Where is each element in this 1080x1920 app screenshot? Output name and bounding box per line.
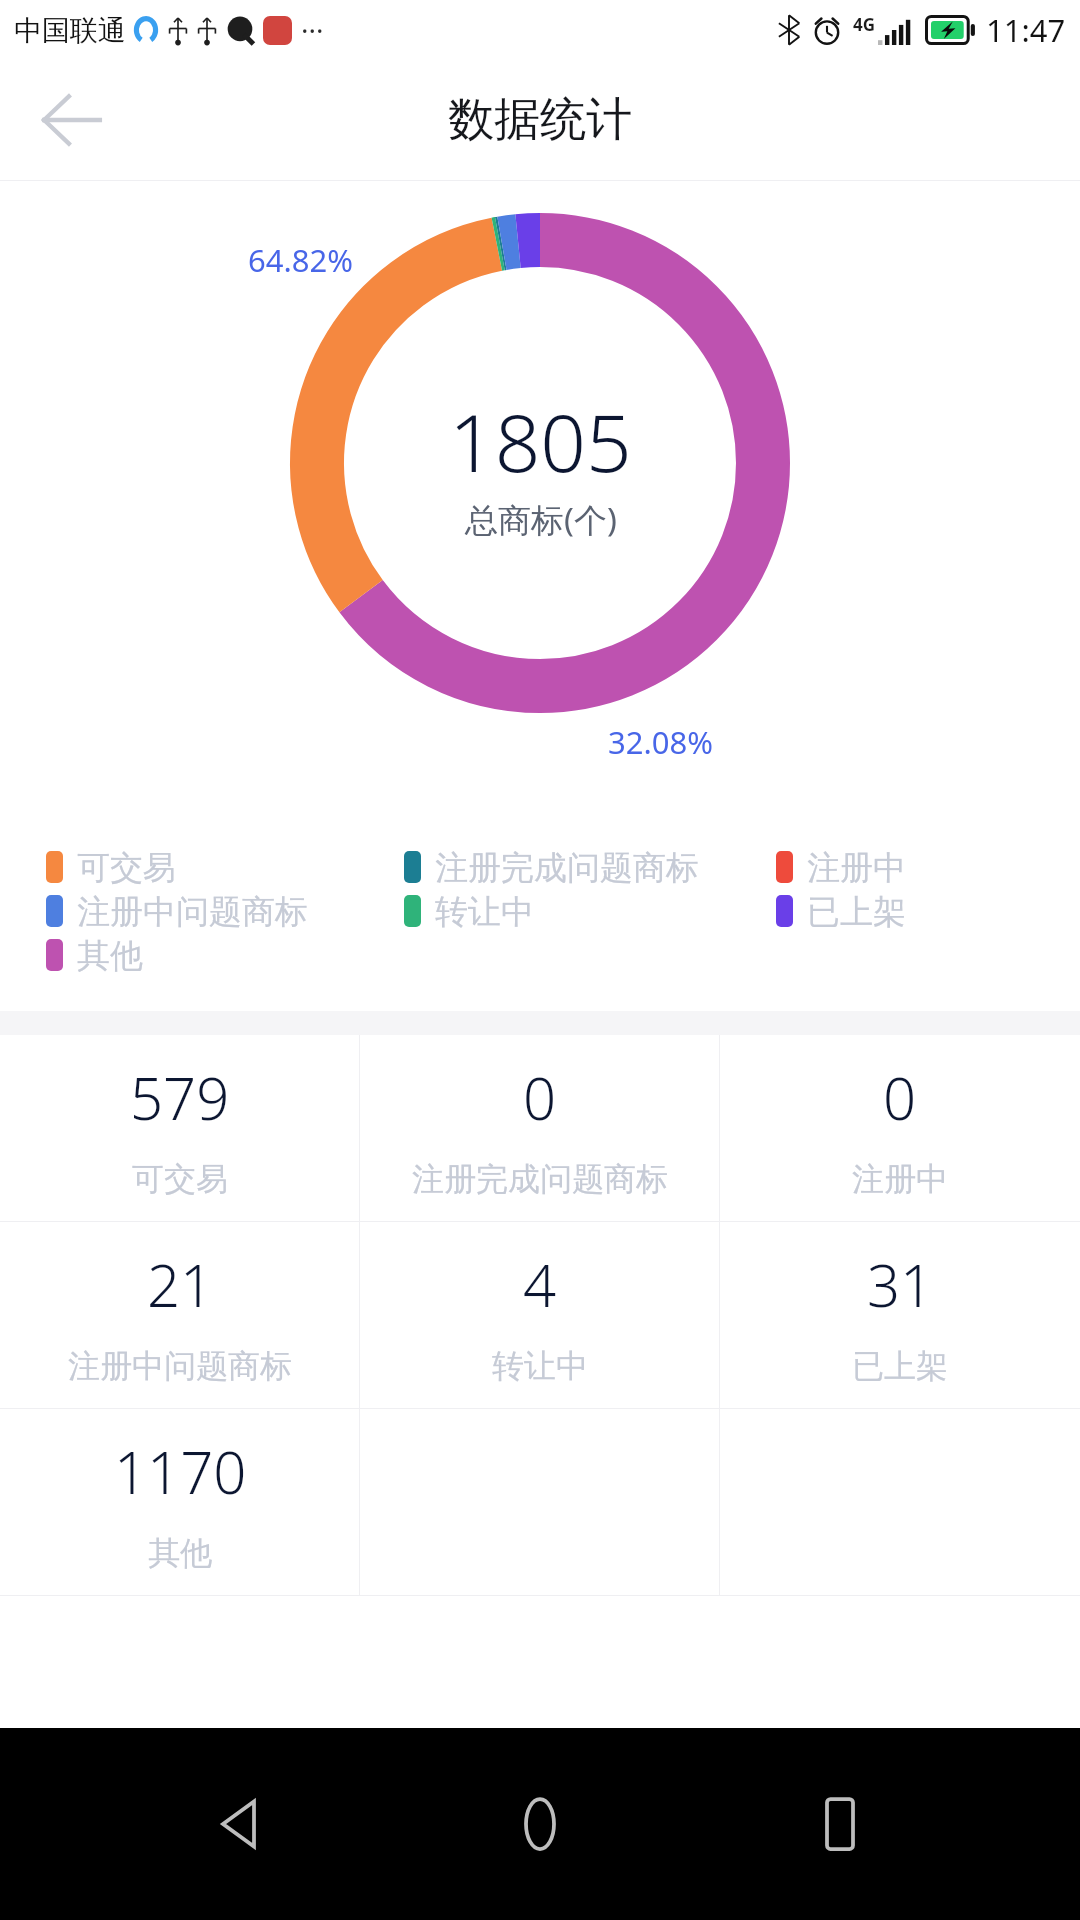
button[interactable]: 注册中问题商标 bbox=[46, 891, 308, 931]
button[interactable]: 0 bbox=[360, 1035, 720, 1221]
button[interactable]: 可交易 bbox=[46, 847, 176, 887]
button[interactable]: 1170 bbox=[0, 1409, 360, 1595]
staticText: 数据统计 bbox=[448, 91, 632, 149]
button[interactable]: 注册完成问题商标 bbox=[404, 847, 699, 887]
staticText: 1805 bbox=[449, 386, 632, 495]
button[interactable]: 其他 bbox=[46, 935, 143, 975]
staticText: 注册完成问题商标 bbox=[435, 847, 699, 887]
staticText: 可交易 bbox=[77, 847, 176, 887]
button[interactable]: Home bbox=[480, 1764, 600, 1884]
staticText: 32.08% bbox=[608, 721, 713, 763]
button[interactable]: 4 bbox=[360, 1222, 720, 1408]
button[interactable]: 转让中 bbox=[404, 891, 534, 931]
button[interactable]: Back bbox=[24, 72, 120, 168]
staticText: 注册中问题商标 bbox=[68, 1346, 292, 1386]
button[interactable]: Recents bbox=[780, 1764, 900, 1884]
staticText: 转让中 bbox=[492, 1346, 588, 1386]
staticText: 11:47 bbox=[986, 9, 1066, 51]
staticText: 其他 bbox=[77, 935, 143, 975]
staticText: 4 bbox=[523, 1245, 557, 1324]
staticText: 注册完成问题商标 bbox=[412, 1159, 668, 1199]
button[interactable]: 注册中 bbox=[776, 847, 906, 887]
staticText: 已上架 bbox=[807, 891, 906, 931]
staticText: 总商标(个) bbox=[465, 497, 617, 542]
staticText: 31 bbox=[867, 1245, 934, 1324]
staticText: 其他 bbox=[148, 1533, 212, 1573]
staticText: 转让中 bbox=[435, 891, 534, 931]
staticText: 0 bbox=[523, 1058, 557, 1137]
button[interactable]: Back bbox=[180, 1764, 300, 1884]
button[interactable]: 21 bbox=[0, 1222, 360, 1408]
staticText: 已上架 bbox=[852, 1346, 948, 1386]
staticText: 注册中问题商标 bbox=[77, 891, 308, 931]
staticText: 579 bbox=[130, 1058, 230, 1137]
staticText: 可交易 bbox=[132, 1159, 228, 1199]
staticText: 0 bbox=[883, 1058, 917, 1137]
staticText: ··· bbox=[301, 11, 324, 49]
staticText: 中国联通 bbox=[14, 13, 126, 48]
button[interactable]: 579 bbox=[0, 1035, 360, 1221]
button[interactable]: 0 bbox=[720, 1035, 1080, 1221]
button[interactable]: 已上架 bbox=[776, 891, 906, 931]
staticText: 注册中 bbox=[852, 1159, 948, 1199]
staticText: 注册中 bbox=[807, 847, 906, 887]
button[interactable]: 31 bbox=[720, 1222, 1080, 1408]
staticText: 1170 bbox=[114, 1432, 247, 1511]
staticText: 4G bbox=[853, 13, 876, 36]
staticText: 64.82% bbox=[248, 239, 353, 281]
staticText: 21 bbox=[147, 1245, 214, 1324]
